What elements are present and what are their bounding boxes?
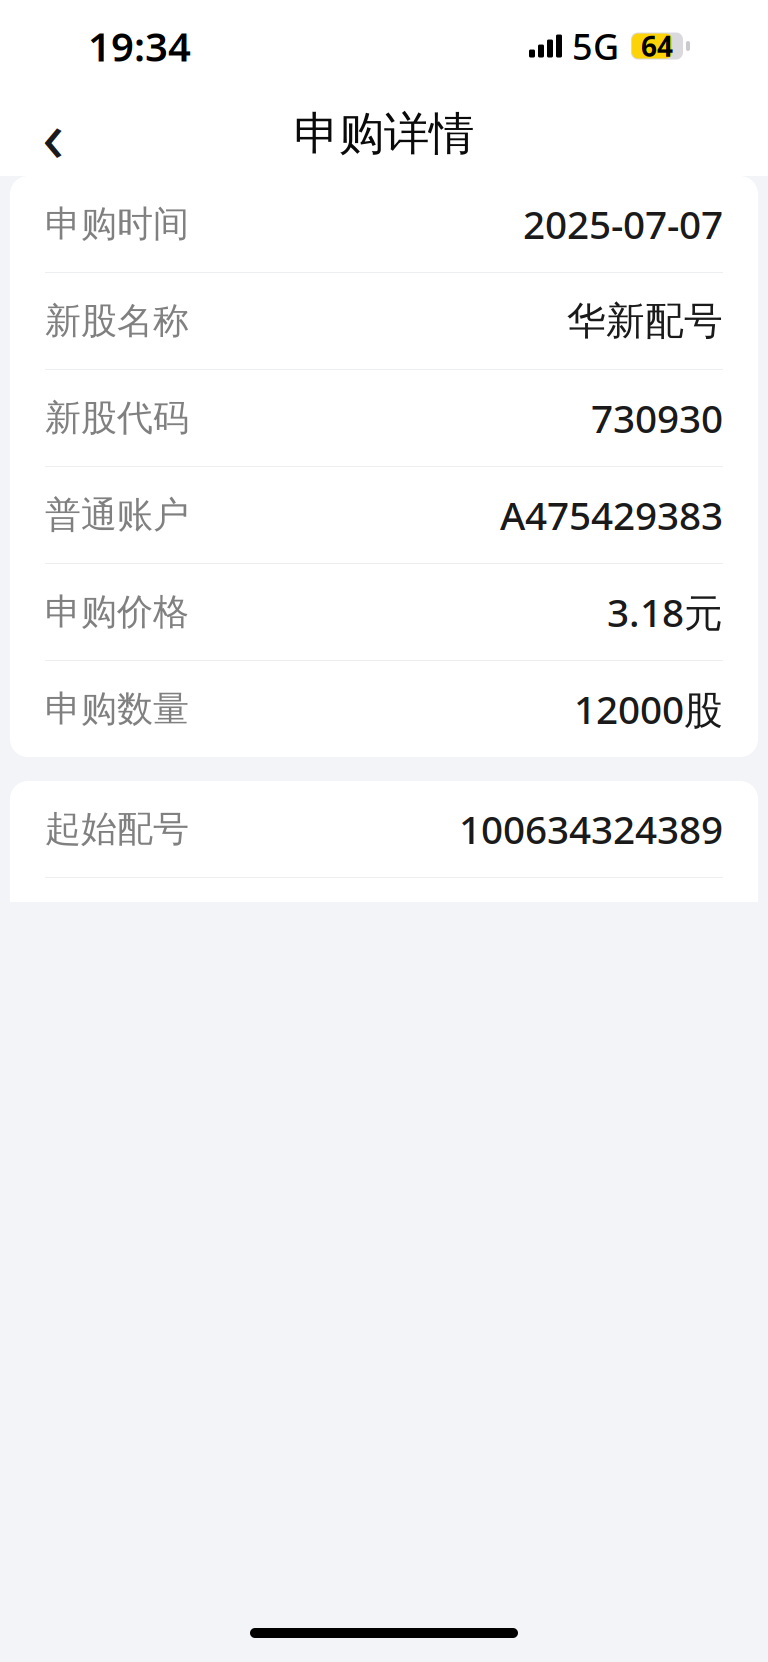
- staticText: 普通账户: [45, 493, 189, 537]
- staticText: 申购详情: [294, 106, 474, 162]
- staticText: ‹: [42, 86, 64, 182]
- staticText: A475429383: [500, 489, 723, 541]
- staticText: 2025-07-07: [523, 198, 723, 250]
- staticText: 3.18元: [607, 586, 723, 638]
- staticText: 起始配号: [45, 807, 189, 851]
- staticText: 5G: [572, 22, 619, 70]
- staticText: 100634324389: [459, 803, 723, 855]
- staticText: 华新配号: [567, 297, 723, 345]
- staticText: 申购价格: [45, 590, 189, 634]
- staticText: 12000股: [574, 683, 723, 735]
- staticText: 申购时间: [45, 202, 189, 246]
- staticText: 申购数量: [45, 687, 189, 731]
- staticText: 64: [641, 27, 673, 65]
- button[interactable]: Back: [14, 95, 92, 173]
- staticText: 新股名称: [45, 299, 189, 343]
- staticText: 730930: [591, 392, 723, 444]
- staticText: 新股代码: [45, 396, 189, 440]
- staticText: 19:34: [88, 19, 191, 72]
